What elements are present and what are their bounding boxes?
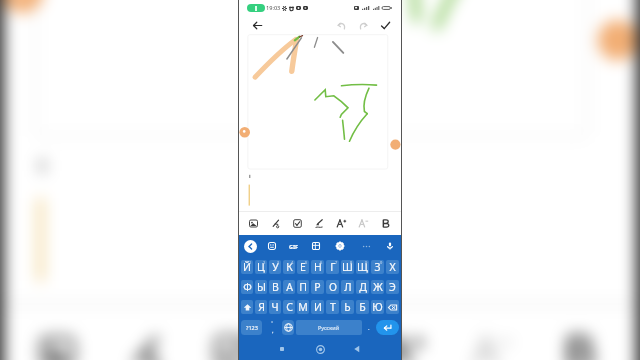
button[interactable]: К bbox=[283, 260, 295, 274]
button[interactable]: Checklist bbox=[186, 306, 273, 360]
staticText: Ф bbox=[243, 280, 252, 294]
button[interactable]: Х bbox=[386, 260, 399, 274]
button[interactable]: Р bbox=[311, 280, 324, 294]
staticText: У bbox=[272, 260, 279, 274]
button[interactable]: И bbox=[311, 300, 324, 314]
button[interactable]: Comma bbox=[263, 317, 281, 338]
button[interactable]: Й bbox=[241, 260, 253, 274]
button[interactable]: Е bbox=[297, 260, 309, 274]
button[interactable]: Г bbox=[326, 260, 339, 274]
button[interactable]: Back bbox=[346, 338, 368, 360]
staticText: 3 bbox=[277, 260, 280, 265]
button[interactable]: Ш bbox=[341, 260, 354, 274]
staticText: . bbox=[368, 324, 370, 332]
staticText: А bbox=[286, 280, 293, 294]
button[interactable]: У bbox=[269, 260, 281, 274]
staticText: 8 bbox=[350, 260, 353, 265]
button[interactable]: Insert image bbox=[16, 306, 99, 360]
button[interactable]: Home bbox=[309, 338, 331, 360]
button[interactable]: Period bbox=[363, 317, 375, 338]
button[interactable]: Increase text size bbox=[330, 212, 352, 235]
button[interactable]: Enter bbox=[376, 320, 399, 335]
button[interactable]: Ц bbox=[255, 260, 267, 274]
staticText: Х bbox=[389, 260, 396, 274]
staticText: Я bbox=[258, 300, 265, 314]
button[interactable]: More options bbox=[359, 235, 373, 257]
staticText: Щ bbox=[357, 260, 368, 274]
staticText: Б bbox=[359, 300, 366, 314]
staticText: 6 bbox=[320, 260, 323, 265]
staticText: К bbox=[286, 260, 293, 274]
button[interactable]: Increase text size bbox=[359, 306, 446, 360]
button[interactable]: Checklist bbox=[286, 212, 308, 235]
staticText: Ж bbox=[373, 280, 383, 294]
button[interactable]: Draw bbox=[99, 306, 186, 360]
button[interactable]: Recents bbox=[271, 338, 293, 360]
button[interactable]: Русский bbox=[296, 320, 362, 335]
button[interactable]: Ь bbox=[341, 300, 354, 314]
button[interactable]: Ф bbox=[241, 280, 253, 294]
staticText: 1 bbox=[249, 260, 252, 265]
staticText: О bbox=[329, 280, 337, 294]
button[interactable]: Clipboard bbox=[309, 235, 323, 257]
button[interactable]: Highlight bbox=[273, 306, 359, 360]
button[interactable]: М bbox=[297, 300, 309, 314]
button[interactable]: ?123 bbox=[241, 320, 262, 335]
staticText: Ш bbox=[342, 260, 353, 274]
staticText: Т bbox=[330, 300, 336, 314]
button[interactable]: Stickers bbox=[265, 235, 279, 257]
button[interactable]: Backspace bbox=[386, 300, 399, 314]
button[interactable]: Н bbox=[311, 260, 324, 274]
staticText: Е bbox=[300, 260, 306, 274]
button[interactable]: Э bbox=[386, 280, 399, 294]
button[interactable]: Л bbox=[341, 280, 354, 294]
staticText: Э bbox=[389, 280, 396, 294]
button[interactable]: О bbox=[326, 280, 339, 294]
staticText: 7 bbox=[335, 260, 338, 265]
button[interactable]: З bbox=[371, 260, 384, 274]
button[interactable]: А bbox=[283, 280, 295, 294]
button[interactable]: Voice input bbox=[383, 235, 397, 257]
staticText: Ц bbox=[257, 260, 265, 274]
button[interactable]: Bold bbox=[533, 306, 620, 360]
button[interactable]: Back bbox=[250, 18, 265, 33]
button[interactable]: Insert image bbox=[243, 212, 264, 235]
staticText: И bbox=[314, 300, 322, 314]
staticText: Ь bbox=[344, 300, 351, 314]
button[interactable]: Т bbox=[326, 300, 339, 314]
button[interactable]: Bold bbox=[374, 212, 396, 235]
staticText: Р bbox=[314, 280, 321, 294]
button[interactable]: Ю bbox=[371, 300, 384, 314]
button[interactable]: Ы bbox=[255, 280, 267, 294]
staticText: Г bbox=[330, 260, 336, 274]
button[interactable]: С bbox=[283, 300, 295, 314]
staticText: Д bbox=[359, 280, 367, 294]
button[interactable]: Decrease text size bbox=[446, 306, 533, 360]
staticText: 5 bbox=[305, 260, 308, 265]
staticText: В bbox=[272, 280, 279, 294]
button[interactable]: GIF bbox=[287, 235, 301, 257]
button[interactable]: Б bbox=[356, 300, 369, 314]
button[interactable]: Redo bbox=[356, 18, 371, 33]
button[interactable]: Decrease text size bbox=[352, 212, 374, 235]
button[interactable]: Shift bbox=[241, 300, 253, 314]
button[interactable]: Д bbox=[356, 280, 369, 294]
button[interactable]: В bbox=[269, 280, 281, 294]
button[interactable]: Щ bbox=[356, 260, 369, 274]
button[interactable]: Change language bbox=[282, 320, 294, 335]
staticText: Н bbox=[314, 260, 322, 274]
button[interactable]: Highlight bbox=[308, 212, 330, 235]
staticText: П bbox=[299, 280, 307, 294]
button[interactable]: Collapse toolbar bbox=[243, 235, 257, 257]
button[interactable]: П bbox=[297, 280, 309, 294]
staticText: Ю bbox=[372, 300, 383, 314]
button[interactable]: Done bbox=[378, 18, 393, 33]
button[interactable]: Draw bbox=[264, 212, 286, 235]
staticText: 2 bbox=[263, 260, 266, 265]
button[interactable]: Ч bbox=[269, 300, 281, 314]
button[interactable]: Я bbox=[255, 300, 267, 314]
button[interactable]: Undo bbox=[334, 18, 349, 33]
button[interactable]: Settings bbox=[333, 235, 347, 257]
staticText: 0 bbox=[380, 260, 383, 265]
button[interactable]: Ж bbox=[371, 280, 384, 294]
